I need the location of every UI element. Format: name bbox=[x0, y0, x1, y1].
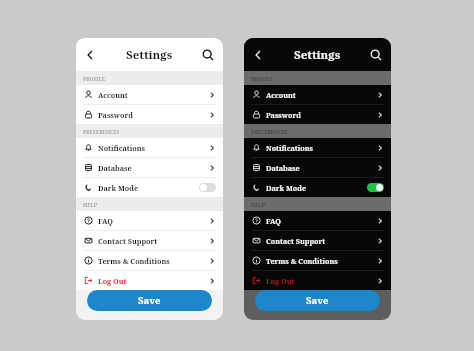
button[interactable]: Dark Mode toggle bbox=[199, 183, 216, 192]
button[interactable]: Back bbox=[80, 45, 100, 65]
staticText: Terms & Conditions bbox=[98, 256, 170, 266]
staticText: Database bbox=[98, 163, 132, 173]
staticText: PROFILE bbox=[251, 75, 274, 82]
button[interactable]: Dark Mode toggle bbox=[367, 183, 384, 192]
button[interactable]: Back bbox=[248, 45, 268, 65]
staticText: Account bbox=[98, 90, 128, 100]
staticText: Log Out bbox=[266, 276, 295, 286]
button[interactable]: Dark Mode bbox=[76, 178, 223, 197]
button[interactable]: Account bbox=[76, 85, 223, 104]
staticText: Settings bbox=[126, 47, 173, 63]
staticText: HELP bbox=[251, 201, 265, 208]
staticText: Account bbox=[266, 90, 296, 100]
staticText: Contact Support bbox=[98, 236, 158, 246]
staticText: Notifications bbox=[98, 143, 145, 153]
button[interactable]: Search bbox=[198, 45, 218, 65]
staticText: Save bbox=[306, 294, 329, 307]
button[interactable]: Password bbox=[244, 105, 391, 124]
button[interactable]: Password bbox=[76, 105, 223, 124]
staticText: FAQ bbox=[266, 216, 281, 226]
button[interactable]: Log Out bbox=[244, 271, 391, 290]
staticText: Password bbox=[98, 110, 133, 120]
staticText: PREFERENCES bbox=[251, 128, 288, 135]
button[interactable]: Search bbox=[366, 45, 386, 65]
button[interactable]: Database bbox=[244, 158, 391, 177]
button[interactable]: Contact Support bbox=[76, 231, 223, 250]
staticText: Contact Support bbox=[266, 236, 326, 246]
button[interactable]: Account bbox=[244, 85, 391, 104]
button[interactable]: FAQ bbox=[244, 211, 391, 230]
button[interactable]: Contact Support bbox=[244, 231, 391, 250]
staticText: Settings bbox=[294, 47, 341, 63]
button[interactable]: Terms & Conditions bbox=[76, 251, 223, 270]
button[interactable]: Database bbox=[76, 158, 223, 177]
button[interactable]: Notifications bbox=[76, 138, 223, 157]
button[interactable]: Dark Mode bbox=[244, 178, 391, 197]
staticText: PREFERENCES bbox=[83, 128, 120, 135]
staticText: Notifications bbox=[266, 143, 313, 153]
button[interactable]: FAQ bbox=[76, 211, 223, 230]
button[interactable]: Save bbox=[255, 290, 380, 311]
button[interactable]: Log Out bbox=[76, 271, 223, 290]
button[interactable]: Notifications bbox=[244, 138, 391, 157]
staticText: Dark Mode bbox=[266, 183, 307, 193]
staticText: Dark Mode bbox=[98, 183, 139, 193]
staticText: Log Out bbox=[98, 276, 127, 286]
staticText: Save bbox=[138, 294, 161, 307]
button[interactable]: Terms & Conditions bbox=[244, 251, 391, 270]
staticText: PROFILE bbox=[83, 75, 106, 82]
staticText: Password bbox=[266, 110, 301, 120]
staticText: Database bbox=[266, 163, 300, 173]
staticText: FAQ bbox=[98, 216, 113, 226]
button[interactable]: Save bbox=[87, 290, 212, 311]
staticText: HELP bbox=[83, 201, 97, 208]
staticText: Terms & Conditions bbox=[266, 256, 338, 266]
